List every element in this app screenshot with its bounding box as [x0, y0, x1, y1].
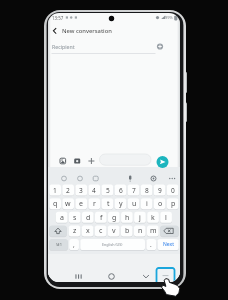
- staticText: p: [171, 199, 176, 209]
- staticText: q: [53, 199, 58, 209]
- button[interactable]: [156, 156, 169, 169]
- staticText: 13:57: [52, 15, 64, 21]
- staticText: 7: [132, 186, 136, 195]
- button[interactable]: 2: [62, 185, 74, 196]
- staticText: u: [132, 199, 137, 209]
- button[interactable]: j: [134, 212, 146, 223]
- staticText: .: [150, 240, 152, 249]
- staticText: 3: [79, 186, 83, 195]
- button[interactable]: m: [147, 225, 159, 236]
- staticText: c: [99, 226, 103, 236]
- button[interactable]: f: [95, 212, 107, 223]
- button[interactable]: 3: [75, 185, 87, 196]
- button[interactable]: n: [134, 225, 146, 236]
- staticText: 4: [92, 186, 96, 195]
- button[interactable]: 5: [102, 185, 114, 196]
- staticText: Next: [163, 241, 174, 248]
- button[interactable]: u: [128, 198, 140, 209]
- staticText: i: [146, 199, 148, 209]
- staticText: v: [112, 226, 116, 236]
- staticText: b: [125, 226, 130, 236]
- staticText: o: [158, 199, 163, 209]
- staticText: New conversation: [62, 27, 112, 35]
- button[interactable]: [106, 271, 117, 282]
- button[interactable]: d: [82, 212, 94, 223]
- staticText: Recipient: [52, 43, 75, 50]
- button[interactable]: 7: [128, 185, 140, 196]
- staticText: ,: [73, 240, 75, 249]
- button[interactable]: s: [69, 212, 81, 223]
- staticText: English (US): [102, 242, 123, 247]
- staticText: 6: [119, 186, 123, 195]
- button[interactable]: h: [121, 212, 133, 223]
- button[interactable]: r: [88, 198, 100, 209]
- button[interactable]: [50, 24, 61, 35]
- button[interactable]: y: [115, 198, 127, 209]
- button[interactable]: [140, 271, 151, 282]
- button[interactable]: !#1: [49, 239, 68, 250]
- button[interactable]: e: [75, 198, 87, 209]
- button[interactable]: Next: [158, 239, 179, 250]
- staticText: m: [150, 226, 157, 236]
- staticText: l: [165, 213, 167, 223]
- button[interactable]: x: [82, 225, 94, 236]
- staticText: !#1: [56, 242, 62, 247]
- staticText: 8: [145, 186, 149, 195]
- staticText: y: [119, 199, 123, 209]
- button[interactable]: z: [69, 225, 81, 236]
- staticText: f: [100, 213, 103, 223]
- staticText: h: [125, 213, 130, 223]
- staticText: d: [86, 213, 91, 223]
- button[interactable]: p: [167, 198, 179, 209]
- staticText: a: [60, 213, 64, 223]
- button[interactable]: o: [154, 198, 166, 209]
- staticText: w: [65, 199, 71, 209]
- button[interactable]: 1: [49, 185, 61, 196]
- staticText: 1: [53, 186, 57, 195]
- staticText: r: [93, 199, 96, 209]
- button[interactable]: 0: [167, 185, 179, 196]
- button[interactable]: English (US): [80, 239, 145, 250]
- staticText: k: [151, 213, 155, 223]
- button[interactable]: t: [102, 198, 114, 209]
- button[interactable]: k: [147, 212, 159, 223]
- staticText: n: [138, 226, 143, 236]
- staticText: 9: [158, 186, 162, 195]
- button[interactable]: [154, 40, 166, 52]
- button[interactable]: g: [108, 212, 120, 223]
- staticText: z: [73, 226, 77, 236]
- button[interactable]: q: [49, 198, 61, 209]
- staticText: j: [139, 213, 141, 223]
- button[interactable]: i: [141, 198, 153, 209]
- button[interactable]: 4: [88, 185, 100, 196]
- button[interactable]: 6: [115, 185, 127, 196]
- button[interactable]: 9: [154, 185, 166, 196]
- button[interactable]: [72, 271, 82, 282]
- staticText: 99%: [165, 15, 173, 20]
- button[interactable]: ,: [69, 239, 79, 250]
- button[interactable]: a: [56, 212, 68, 223]
- button[interactable]: c: [95, 225, 107, 236]
- button[interactable]: w: [62, 198, 74, 209]
- staticText: 2: [66, 186, 70, 195]
- button[interactable]: 8: [141, 185, 153, 196]
- button[interactable]: l: [160, 212, 172, 223]
- staticText: g: [112, 213, 117, 223]
- staticText: 5: [106, 186, 110, 195]
- button[interactable]: b: [121, 225, 133, 236]
- staticText: e: [79, 199, 83, 209]
- staticText: s: [73, 213, 77, 223]
- staticText: x: [86, 226, 90, 236]
- staticText: t: [107, 199, 110, 209]
- button[interactable]: v: [108, 225, 120, 236]
- button[interactable]: .: [146, 239, 156, 250]
- staticText: 0: [171, 186, 175, 195]
